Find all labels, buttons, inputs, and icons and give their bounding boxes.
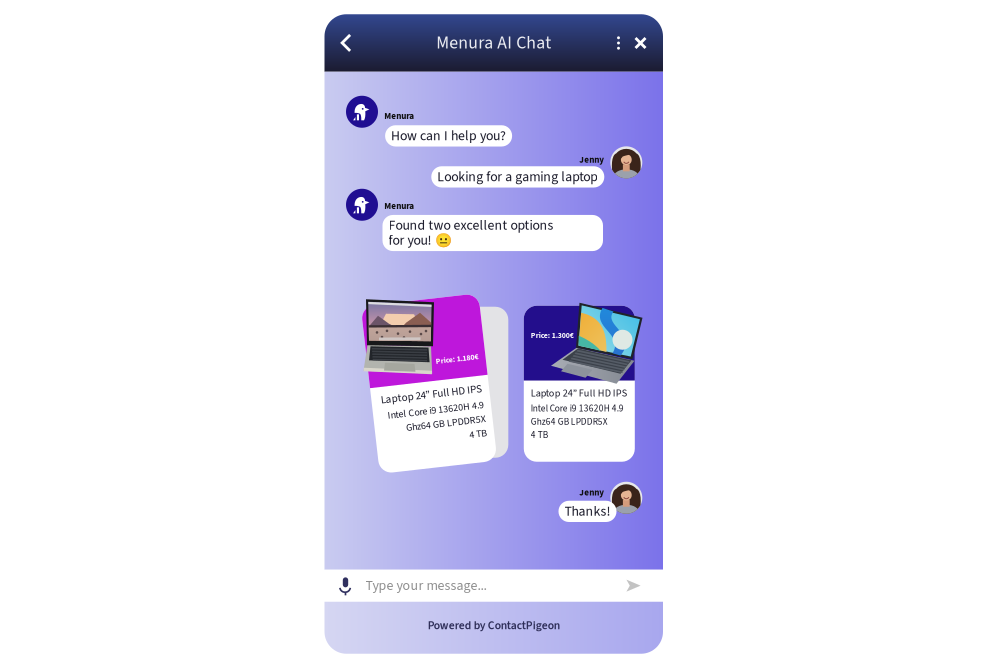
staticText: Laptop 24” Full HD IPS — [379, 388, 481, 401]
button[interactable]: Back — [324, 24, 361, 61]
staticText: Jenny — [579, 488, 604, 498]
staticText: Menura AI Chat — [436, 33, 551, 53]
staticText: Price: 1.300€ — [531, 331, 574, 340]
staticText: Ghz64 GB LPDDR5X — [401, 418, 481, 432]
staticText: Intel Core i9 13620H 4.9 — [531, 402, 624, 415]
button[interactable]: Voice input — [324, 570, 365, 602]
button[interactable]: Close — [627, 27, 663, 58]
staticText: Price: 1.180€ — [438, 357, 481, 367]
staticText: Laptop 24” Full HD IPS — [531, 387, 627, 399]
staticText: Found two excellent options for you! 😐 — [388, 218, 553, 248]
staticText: Menura — [384, 111, 414, 121]
staticText: Jenny — [579, 155, 604, 165]
staticText: 4 TB — [531, 428, 548, 442]
staticText: 4 TB — [463, 432, 481, 446]
button[interactable]: More options — [610, 27, 627, 58]
staticText: Type your message... — [365, 578, 486, 593]
staticText: Intel Core i9 13620H 4.9 — [384, 404, 481, 418]
staticText: Ghz64 GB LPDDR5X — [531, 415, 608, 428]
staticText: Thanks! — [564, 504, 610, 519]
staticText: Powered by ContactPigeon — [428, 619, 560, 632]
button[interactable]: Send — [626, 570, 663, 601]
staticText: Menura — [384, 201, 414, 211]
staticText: Looking for a gaming laptop — [437, 169, 598, 184]
button[interactable]: Price: 1.300€ — [524, 306, 635, 462]
button[interactable]: Price: 1.180€ — [370, 299, 488, 468]
staticText: How can I help you? — [391, 128, 506, 143]
